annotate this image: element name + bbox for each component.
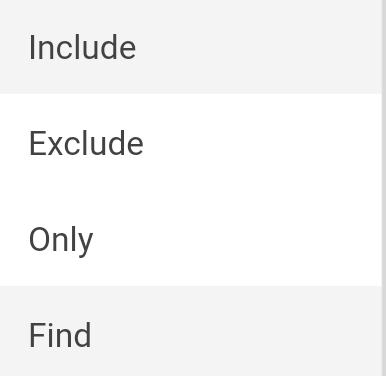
other: Panel edge	[381, 0, 386, 376]
button[interactable]: Find	[0, 286, 386, 376]
staticText: Exclude	[28, 124, 145, 163]
staticText: Find	[28, 316, 93, 355]
button[interactable]: Only	[0, 190, 386, 286]
staticText: Include	[28, 28, 137, 67]
button[interactable]: Exclude	[0, 94, 386, 190]
staticText: Only	[28, 220, 94, 259]
button[interactable]: Include	[0, 0, 386, 94]
